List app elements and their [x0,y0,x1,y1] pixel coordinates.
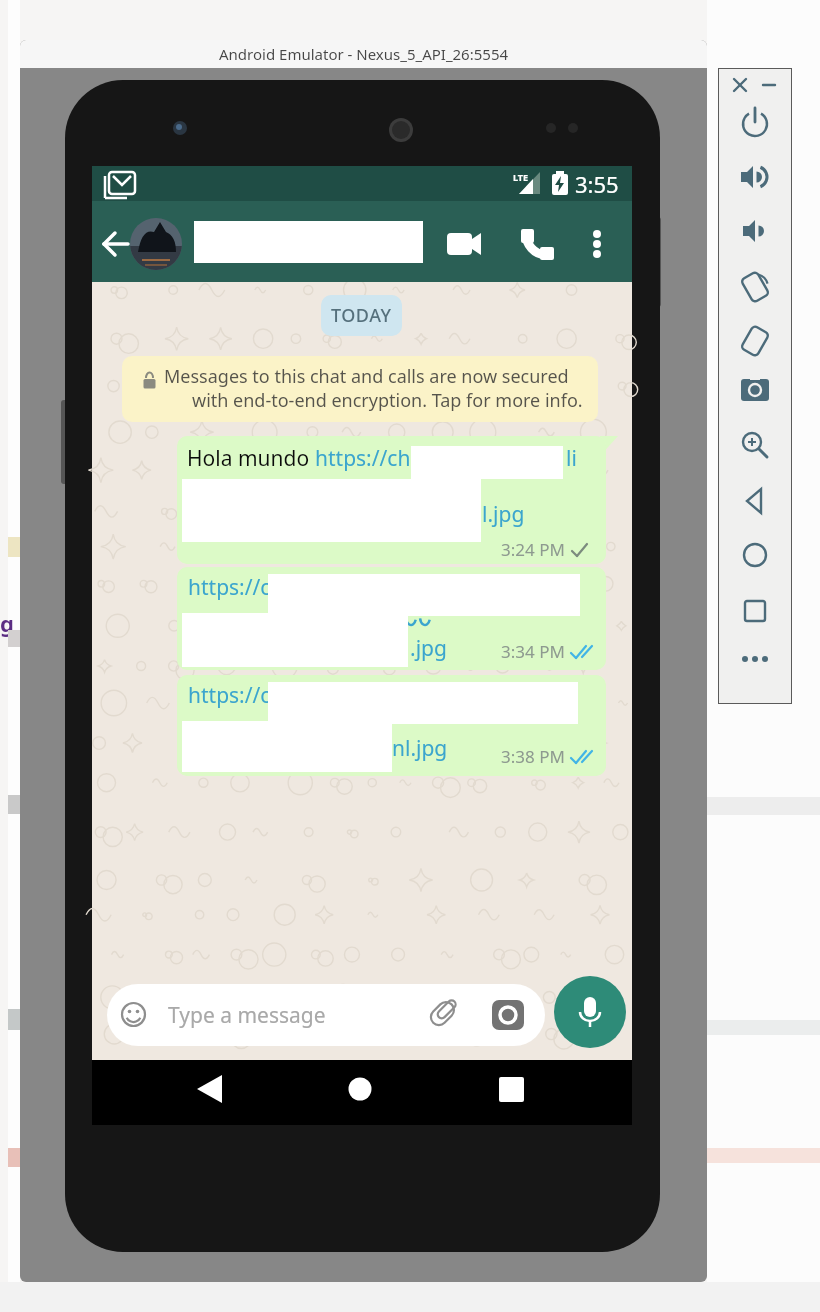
staticText: 3:24 PM [501,538,565,561]
staticText: TODAY [331,303,392,328]
button[interactable] [180,1064,240,1116]
button[interactable] [756,74,782,96]
staticText: .jpg [410,634,447,663]
button[interactable] [728,211,782,255]
button[interactable] [420,993,462,1037]
button[interactable] [513,221,559,265]
button[interactable] [728,157,782,201]
staticText: https://c [188,573,271,602]
button[interactable] [177,567,606,670]
staticText: Hola mundo [187,444,315,473]
button[interactable] [728,637,782,681]
button[interactable] [315,443,588,475]
button[interactable] [116,997,152,1033]
staticText: LTE [513,171,529,183]
button[interactable] [177,675,606,776]
button[interactable] [728,319,782,363]
staticText: with end-to-end encryption. Tap for more… [192,388,583,413]
button[interactable] [130,218,182,270]
staticText: https://c [188,681,271,710]
button[interactable] [554,976,626,1048]
button[interactable] [728,104,782,148]
button[interactable] [96,221,140,265]
button[interactable] [122,356,598,422]
staticText: Type a message [168,1001,326,1030]
staticText: 3:38 PM [501,745,565,768]
button[interactable] [728,423,782,467]
button[interactable] [728,589,782,633]
staticText: Messages to this chat and calls are now … [164,364,569,389]
button[interactable] [728,368,782,412]
staticText: li [566,444,577,473]
staticText: https://chrisjenx.li [315,444,493,473]
button[interactable] [177,436,606,564]
button[interactable] [107,984,545,1046]
button[interactable] [728,479,782,523]
button[interactable] [330,1064,390,1116]
button[interactable] [486,995,528,1035]
button[interactable] [579,221,617,265]
staticText: Android Emulator - Nexus_5_API_26:5554 [219,44,509,64]
staticText: 3:34 PM [501,640,565,663]
staticText: g [0,608,14,638]
button[interactable] [728,265,782,309]
button[interactable] [188,681,448,713]
button[interactable] [439,221,487,265]
staticText: l.jpg [482,500,525,529]
button[interactable] [470,1064,532,1116]
staticText: nl.jpg [392,734,448,763]
staticText: 3:55 [575,169,619,199]
button[interactable] [188,573,448,605]
button[interactable] [727,74,753,96]
button[interactable] [728,533,782,577]
